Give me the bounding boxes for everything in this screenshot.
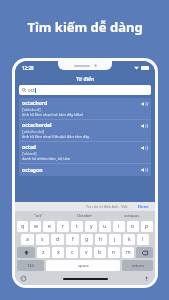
button[interactable]: Emoji bbox=[20, 275, 27, 282]
button[interactable]: v bbox=[80, 247, 92, 258]
button[interactable]: r bbox=[57, 221, 69, 232]
staticText: octagon bbox=[22, 167, 140, 174]
staticText: 12:28 bbox=[22, 65, 34, 71]
button[interactable]: octachordal bbox=[19, 120, 151, 141]
staticText: c bbox=[71, 249, 74, 256]
staticText: t bbox=[76, 223, 78, 230]
button[interactable]: Dictation bbox=[143, 275, 150, 282]
button[interactable]: d bbox=[51, 234, 64, 245]
staticText: danh từ nhóm tám, bộ tám bbox=[22, 156, 71, 161]
staticText: s bbox=[41, 236, 44, 243]
button[interactable]: h bbox=[95, 234, 107, 245]
staticText: tính từ (âm nhạc) (thuộc) đàn tám dây bbox=[22, 134, 90, 139]
button[interactable]: Shift bbox=[17, 247, 35, 258]
button[interactable]: t bbox=[71, 221, 83, 232]
staticText: e bbox=[48, 223, 51, 230]
button[interactable]: c bbox=[66, 247, 78, 258]
staticText: octopus bbox=[124, 213, 140, 218]
button[interactable]: e bbox=[43, 221, 55, 232]
staticText: f bbox=[72, 236, 74, 243]
button[interactable]: y bbox=[85, 221, 97, 232]
staticText: n bbox=[112, 249, 116, 256]
button[interactable]: Play pronunciation bbox=[140, 100, 148, 108]
button[interactable]: p bbox=[141, 221, 153, 232]
button[interactable]: k bbox=[123, 234, 135, 245]
button[interactable]: m bbox=[122, 247, 134, 258]
staticText: u bbox=[103, 223, 107, 230]
button[interactable]: q bbox=[17, 221, 28, 232]
button[interactable]: return bbox=[122, 260, 153, 271]
staticText: space bbox=[78, 263, 89, 268]
staticText: Done bbox=[138, 204, 149, 210]
staticText: d bbox=[56, 236, 60, 243]
staticText: v bbox=[85, 249, 88, 256]
staticText: k bbox=[128, 236, 131, 243]
button[interactable]: a bbox=[21, 234, 34, 245]
staticText: w bbox=[34, 223, 38, 230]
staticText: o bbox=[131, 223, 135, 230]
staticText: x bbox=[57, 249, 60, 256]
button[interactable]: n bbox=[108, 247, 120, 258]
button[interactable]: f bbox=[66, 234, 79, 245]
staticText: a bbox=[26, 236, 29, 243]
button[interactable]: Backspace bbox=[136, 247, 153, 258]
button[interactable]: g bbox=[81, 234, 93, 245]
button[interactable]: Play pronunciation bbox=[140, 122, 148, 130]
staticText: l bbox=[142, 236, 144, 243]
button[interactable]: oct bbox=[19, 85, 151, 95]
button[interactable]: b bbox=[94, 247, 106, 258]
staticText: octachord bbox=[22, 100, 48, 107]
staticText: m bbox=[126, 249, 131, 256]
staticText: [ˈɒktəkɔːd] bbox=[22, 107, 41, 112]
staticText: i bbox=[118, 223, 120, 230]
button[interactable]: 123 bbox=[17, 260, 44, 271]
button[interactable]: x bbox=[52, 247, 64, 258]
staticText: q bbox=[21, 223, 25, 230]
staticText: oct bbox=[28, 87, 35, 93]
button[interactable]: s bbox=[36, 234, 49, 245]
button[interactable]: octad bbox=[19, 142, 151, 163]
staticText: Tìm kiếm dễ dàng bbox=[27, 18, 143, 36]
staticText: return bbox=[132, 263, 144, 268]
button[interactable]: octagon bbox=[19, 164, 151, 176]
staticText: z bbox=[42, 249, 45, 256]
staticText: r bbox=[62, 223, 65, 230]
staticText: g bbox=[85, 236, 89, 243]
staticText: Tra cứu từ điển Anh - Việt bbox=[86, 204, 128, 209]
button[interactable]: Done bbox=[136, 204, 151, 210]
button[interactable]: l bbox=[137, 234, 149, 245]
staticText: y bbox=[90, 223, 93, 230]
staticText: Từ điển bbox=[76, 76, 95, 83]
staticText: h bbox=[99, 236, 103, 243]
staticText: j bbox=[114, 236, 116, 243]
button[interactable]: October bbox=[61, 211, 108, 220]
button[interactable]: Play pronunciation bbox=[140, 166, 148, 174]
button[interactable]: u bbox=[99, 221, 111, 232]
button[interactable]: Play pronunciation bbox=[140, 144, 148, 152]
staticText: [ˈɒktæd] bbox=[22, 151, 37, 156]
button[interactable]: i bbox=[113, 221, 125, 232]
button[interactable]: w bbox=[30, 221, 41, 232]
staticText: p bbox=[145, 223, 149, 230]
button[interactable]: space bbox=[46, 260, 120, 271]
staticText: octachordal bbox=[22, 122, 52, 129]
staticText: October bbox=[77, 213, 93, 218]
button[interactable]: z bbox=[37, 247, 50, 258]
staticText: b bbox=[98, 249, 102, 256]
button[interactable]: o bbox=[127, 221, 139, 232]
staticText: "oct" bbox=[34, 213, 43, 218]
button[interactable]: "oct" bbox=[15, 211, 61, 220]
staticText: 123 bbox=[27, 263, 34, 268]
staticText: tính từ (âm nhạc) có tám dây (đàn) bbox=[22, 112, 84, 117]
staticText: [ˌɒktəˈkɔːdəl] bbox=[22, 129, 45, 134]
button[interactable]: j bbox=[109, 234, 121, 245]
button[interactable]: octachord bbox=[19, 98, 151, 119]
button[interactable]: octopus bbox=[108, 211, 155, 220]
staticText: octad bbox=[22, 144, 37, 151]
